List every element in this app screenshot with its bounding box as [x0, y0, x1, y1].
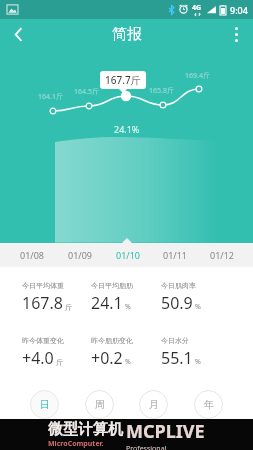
staticText: 4G	[192, 3, 202, 13]
staticText: MCPLIVE	[126, 419, 205, 444]
staticText: 01/08	[20, 249, 44, 261]
staticText: 50.9	[161, 292, 193, 314]
staticText: 167.7斤	[105, 73, 141, 87]
staticText: +4.0	[22, 347, 54, 369]
staticText: 今日平均体重	[22, 281, 64, 290]
button[interactable]: 周	[85, 390, 114, 419]
staticText: 24.1%	[114, 123, 140, 135]
button[interactable]: 01/08	[8, 243, 56, 267]
staticText: 01/11	[163, 249, 187, 261]
staticText: 年	[204, 398, 214, 411]
staticText: Professional	[126, 444, 167, 450]
button[interactable]: 月	[139, 390, 168, 419]
staticText: +0.2	[91, 347, 123, 369]
staticText: 斤	[65, 303, 72, 312]
staticText: 01/10	[116, 249, 140, 261]
staticText: 55.1	[161, 347, 193, 369]
button[interactable]: 01/09	[56, 243, 104, 267]
button[interactable]: Back	[0, 19, 36, 49]
staticText: 01/12	[210, 249, 234, 261]
staticText: 斤	[56, 358, 63, 367]
staticText: 01/09	[68, 249, 92, 261]
staticText: 今日平均脂肪	[91, 281, 133, 290]
staticText: 微型计算机	[48, 420, 123, 439]
staticText: 24.1	[91, 292, 123, 314]
staticText: 周	[95, 398, 105, 411]
button[interactable]: 01/11	[151, 243, 198, 267]
staticText: %	[195, 302, 201, 312]
staticText: %	[125, 302, 131, 312]
button[interactable]: 01/12	[198, 243, 245, 267]
staticText: 164.5斤	[74, 87, 99, 97]
staticText: 昨今体重变化	[22, 336, 64, 345]
staticText: 169.4斤	[185, 71, 210, 81]
staticText: MicroComputer.	[48, 439, 104, 449]
staticText: 164.1斤	[38, 92, 63, 102]
button[interactable]: More options	[219, 19, 253, 49]
staticText: 167.8	[22, 292, 63, 314]
staticText: 日	[40, 398, 50, 411]
staticText: 昨今脂肪变化	[91, 336, 133, 345]
staticText: 165.8斤	[149, 86, 174, 96]
button[interactable]: 年	[194, 390, 223, 419]
button[interactable]: 日	[30, 390, 59, 419]
staticText: %	[195, 357, 201, 367]
staticText: 今日肌肉率	[161, 281, 196, 290]
staticText: 今日水分	[161, 336, 189, 345]
staticText: 9:04	[230, 4, 248, 16]
button[interactable]: 01/10	[104, 243, 151, 267]
staticText: %	[125, 357, 131, 367]
staticText: 月	[149, 398, 159, 411]
staticText: 简报	[112, 25, 142, 44]
